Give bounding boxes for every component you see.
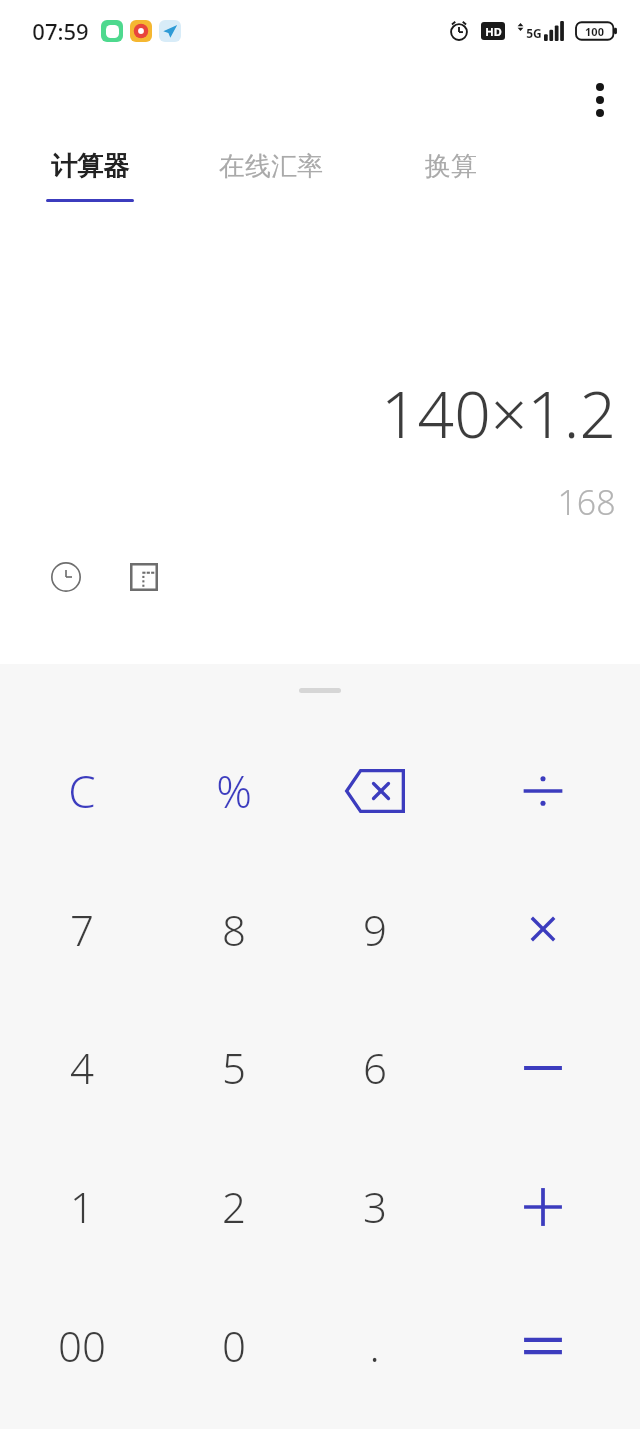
staticText: 00 — [58, 1317, 106, 1374]
staticText: 6 — [363, 1039, 387, 1096]
button[interactable]: 7 — [0, 860, 163, 998]
button[interactable]: Plus — [445, 1137, 640, 1276]
staticText: 计算器 — [51, 150, 129, 183]
staticText: C — [68, 761, 96, 821]
staticText: 7 — [70, 901, 94, 958]
button[interactable]: 0 — [163, 1276, 304, 1415]
other: Multiply — [523, 909, 563, 949]
button[interactable]: 换算 — [362, 138, 540, 224]
button[interactable]: Minus — [445, 998, 640, 1137]
staticText: 07:59 — [32, 16, 89, 46]
button[interactable]: 3 — [304, 1137, 445, 1276]
other: Plus — [521, 1185, 565, 1229]
staticText: 换算 — [425, 150, 477, 183]
button[interactable]: % — [163, 722, 304, 860]
staticText: 9 — [363, 901, 387, 958]
button[interactable]: Multiply — [445, 860, 640, 998]
button[interactable]: History — [46, 557, 86, 597]
staticText: 100 — [585, 24, 604, 39]
staticText: HD — [485, 24, 502, 39]
button[interactable]: Equals — [445, 1276, 640, 1415]
button[interactable]: 2 — [163, 1137, 304, 1276]
button[interactable]: . — [304, 1276, 445, 1415]
staticText: 8 — [222, 901, 246, 958]
staticText: 5 — [222, 1039, 246, 1096]
other: Divide — [521, 769, 565, 813]
button[interactable]: Scientific keypad — [124, 557, 164, 597]
other: Equals — [521, 1328, 565, 1364]
button[interactable]: 8 — [163, 860, 304, 998]
button[interactable]: C — [0, 722, 163, 860]
staticText: 3 — [363, 1178, 387, 1235]
button[interactable]: 6 — [304, 998, 445, 1137]
button[interactable]: Divide — [445, 722, 640, 860]
staticText: 140×1.2 — [381, 370, 616, 457]
button[interactable]: More options — [574, 74, 626, 126]
staticText: . — [369, 1317, 380, 1374]
staticText: % — [216, 761, 252, 821]
button[interactable]: 5 — [163, 998, 304, 1137]
staticText: 0 — [222, 1317, 246, 1374]
staticText: 4 — [70, 1039, 94, 1096]
staticText: 5G — [526, 25, 542, 41]
staticText: 168 — [557, 479, 616, 525]
button[interactable]: 4 — [0, 998, 163, 1137]
staticText: 1 — [70, 1178, 94, 1235]
other: Minus — [521, 1048, 565, 1088]
button[interactable]: 9 — [304, 860, 445, 998]
button[interactable]: 计算器 — [0, 138, 180, 224]
button[interactable]: Backspace — [304, 722, 445, 860]
staticText: 在线汇率 — [219, 150, 323, 183]
button[interactable]: 在线汇率 — [180, 138, 362, 224]
other: Backspace — [345, 769, 405, 813]
staticText: 2 — [222, 1178, 246, 1235]
button[interactable]: 1 — [0, 1137, 163, 1276]
button[interactable]: 00 — [0, 1276, 163, 1415]
